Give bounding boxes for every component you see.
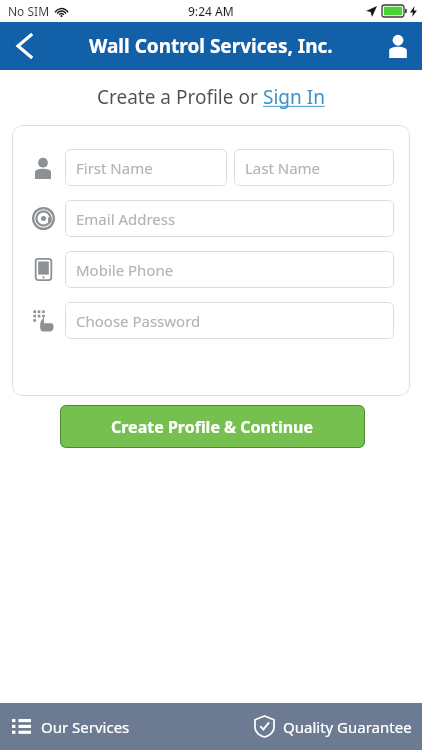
button[interactable]: First Name: [65, 149, 227, 186]
button[interactable]: Create Profile & Continue: [60, 405, 365, 448]
staticText: Sign In: [263, 84, 325, 110]
staticText: Wall Control Services, Inc.: [89, 33, 333, 59]
button[interactable]: Mobile Phone: [65, 251, 394, 288]
button[interactable]: Account: [374, 22, 422, 70]
button[interactable]: Sign In: [263, 84, 325, 110]
staticText: Mobile Phone: [76, 260, 174, 280]
staticText: Email Address: [76, 209, 176, 229]
staticText: Last Name: [245, 158, 321, 178]
staticText: Our Services: [41, 717, 130, 737]
button[interactable]: Our Services: [0, 703, 142, 750]
staticText: Choose Password: [76, 311, 201, 331]
button[interactable]: Quality Guarantee: [243, 703, 422, 750]
staticText: First Name: [76, 158, 153, 178]
staticText: Quality Guarantee: [283, 717, 412, 737]
button[interactable]: Back: [0, 22, 48, 70]
staticText: Create a Profile or: [97, 84, 263, 110]
staticText: Create Profile & Continue: [111, 416, 314, 438]
button[interactable]: Choose Password: [65, 302, 394, 339]
staticText: No SIM: [8, 3, 50, 19]
button[interactable]: Last Name: [234, 149, 394, 186]
button[interactable]: Email Address: [65, 200, 394, 237]
staticText: 9:24 AM: [188, 3, 234, 19]
